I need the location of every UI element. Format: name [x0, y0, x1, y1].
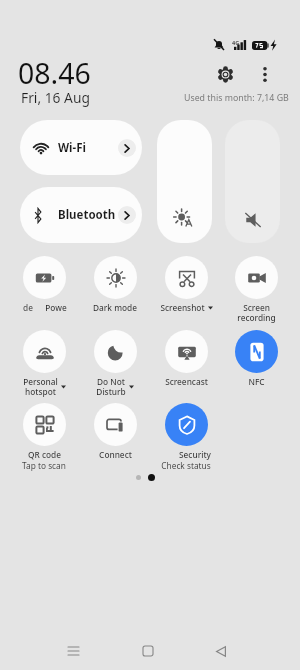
button[interactable]: Security: [151, 403, 221, 471]
staticText: 08.46: [18, 54, 91, 93]
staticText: Bluetooth: [58, 207, 116, 223]
staticText: Check status: [161, 460, 211, 471]
button[interactable]: Screencast: [151, 330, 221, 387]
button[interactable]: Back: [207, 637, 235, 665]
button[interactable]: Connect: [80, 403, 150, 460]
staticText: Do Not Disturb: [96, 376, 126, 398]
button[interactable]: Wi-Fi: [20, 120, 142, 175]
button[interactable]: Settings: [212, 61, 239, 88]
button[interactable]: Screenshot: [151, 256, 221, 313]
staticText: Connect: [99, 449, 132, 460]
button[interactable]: Dark mode: [80, 256, 150, 313]
staticText: Tap to scan: [22, 460, 66, 471]
staticText: Powe: [45, 302, 67, 313]
staticText: Screenshot: [160, 302, 205, 313]
button[interactable]: More options: [251, 61, 278, 88]
staticText: de: [23, 302, 33, 313]
staticText: Screen recording: [237, 302, 276, 324]
button[interactable]: Screen recording: [221, 256, 291, 324]
button[interactable]: Home: [134, 637, 162, 665]
button[interactable]: Volume: [225, 120, 280, 243]
staticText: 4G: [232, 39, 240, 46]
button[interactable]: Recents: [59, 637, 87, 665]
staticText: Personal hotspot: [23, 376, 58, 398]
staticText: Screencast: [165, 376, 208, 387]
staticText: Fri, 16 Aug: [21, 88, 90, 107]
button[interactable]: Personal hotspot: [9, 330, 79, 398]
button[interactable]: Brightness: [157, 120, 212, 243]
staticText: Dark mode: [93, 302, 137, 313]
button[interactable]: Bluetooth: [20, 187, 142, 243]
button[interactable]: Do Not Disturb: [80, 330, 150, 398]
button[interactable]: QR code: [9, 403, 79, 471]
staticText: QR code: [28, 449, 61, 460]
staticText: Wi-Fi: [58, 140, 86, 156]
staticText: NFC: [248, 376, 265, 387]
button[interactable]: NFC: [221, 330, 291, 387]
staticText: Used this month: 7,14 GB: [184, 92, 289, 104]
button[interactable]: Powe: [9, 256, 79, 313]
staticText: Security: [179, 449, 211, 460]
